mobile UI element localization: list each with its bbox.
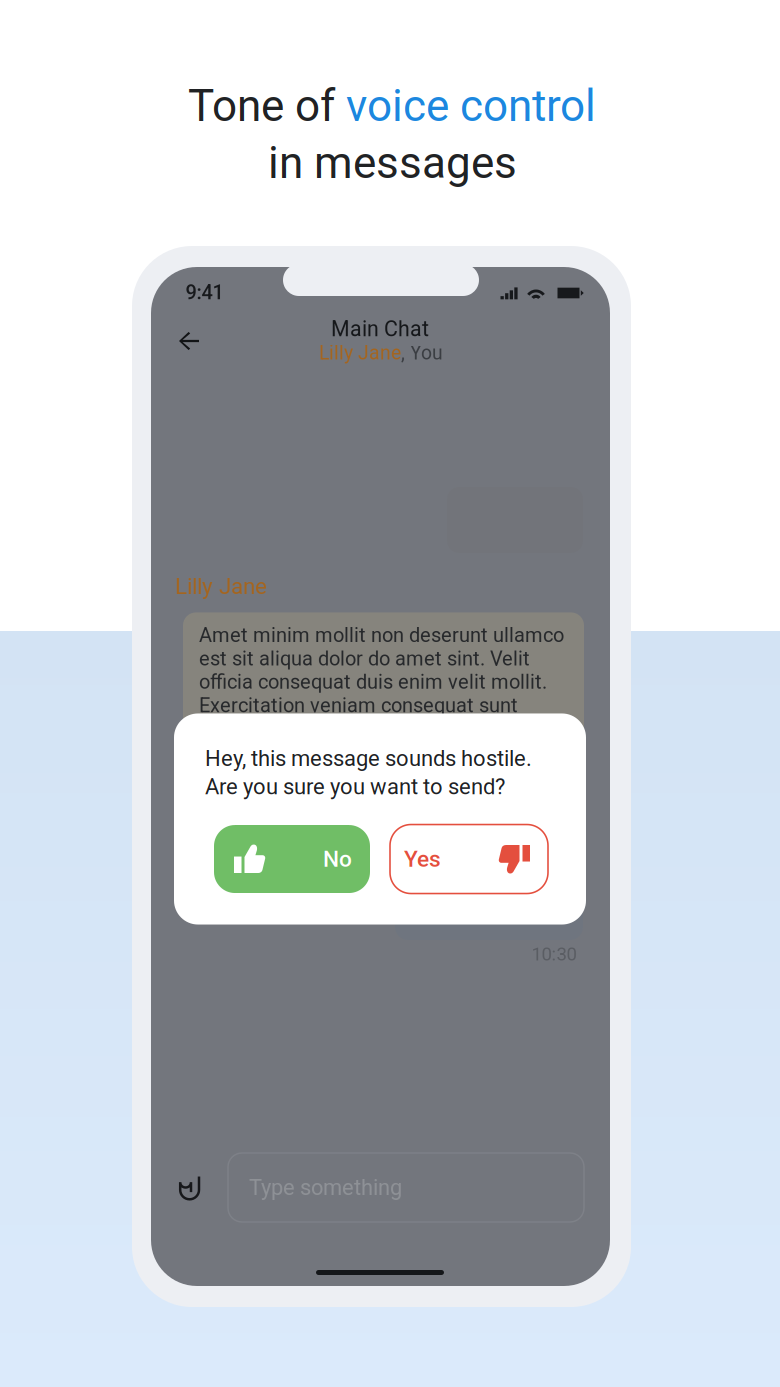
button[interactable]: Attach file <box>168 1165 212 1209</box>
staticText: Yes <box>404 846 441 872</box>
staticText: 9:41 <box>185 281 223 304</box>
staticText: , You <box>401 342 443 364</box>
staticText: Main Chat <box>331 316 429 341</box>
staticText: Lilly Jane <box>175 573 267 600</box>
staticText: 10:30 <box>531 943 576 965</box>
staticText: Hey, this message sounds hostile. Are yo… <box>205 745 532 800</box>
button[interactable]: No <box>214 825 370 893</box>
staticText: in messages <box>268 137 517 189</box>
button[interactable]: Yes <box>390 824 548 893</box>
staticText: Amet minim mollit non deserunt ullamco e… <box>199 623 564 741</box>
button[interactable]: Back <box>163 317 215 365</box>
staticText: Tone of <box>188 80 346 132</box>
staticText: No <box>323 846 352 872</box>
staticText: voice control <box>346 80 596 132</box>
staticText: Lilly Jane <box>319 342 401 364</box>
staticText: Type something <box>249 1175 402 1200</box>
